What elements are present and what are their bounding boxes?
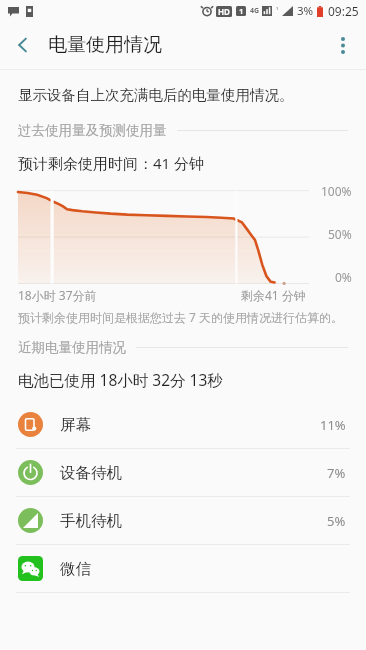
- button[interactable]: 设备待机: [0, 449, 366, 496]
- staticText: 100%: [321, 183, 352, 199]
- staticText: 预计剩余使用时间：41 分钟: [18, 153, 205, 173]
- button[interactable]: 屏幕: [0, 401, 366, 448]
- staticText: 手机待机: [60, 511, 122, 531]
- staticText: 电量使用情况: [48, 33, 162, 57]
- staticText: 50%: [328, 226, 352, 242]
- staticText: HD: [218, 6, 230, 17]
- button[interactable]: 手机待机: [0, 497, 366, 544]
- staticText: 设备待机: [60, 463, 122, 483]
- staticText: 11%: [320, 416, 346, 434]
- staticText: 09:25: [328, 3, 359, 19]
- staticText: 4G: [250, 6, 260, 16]
- staticText: 过去使用量及预测使用量: [18, 122, 167, 139]
- staticText: 1: [239, 6, 244, 16]
- staticText: 0%: [335, 269, 352, 285]
- staticText: 微信: [60, 559, 91, 579]
- staticText: 7%: [327, 464, 346, 482]
- staticText: ¹: [276, 6, 279, 16]
- staticText: 屏幕: [60, 415, 91, 435]
- button[interactable]: Back: [0, 22, 46, 68]
- staticText: 显示设备自上次充满电后的电量使用情况。: [18, 86, 294, 104]
- button[interactable]: 微信: [0, 545, 366, 592]
- staticText: 18小时 37分前: [18, 287, 97, 303]
- staticText: 剩余41 分钟: [241, 287, 306, 303]
- staticText: 近期电量使用情况: [18, 339, 126, 356]
- staticText: 3%: [297, 3, 314, 19]
- button[interactable]: More options: [320, 22, 366, 68]
- staticText: 电池已使用 18小时 32分 13秒: [18, 369, 223, 390]
- staticText: 5%: [327, 512, 346, 530]
- staticText: 预计剩余使用时间是根据您过去 7 天的使用情况进行估算的。: [18, 309, 344, 325]
